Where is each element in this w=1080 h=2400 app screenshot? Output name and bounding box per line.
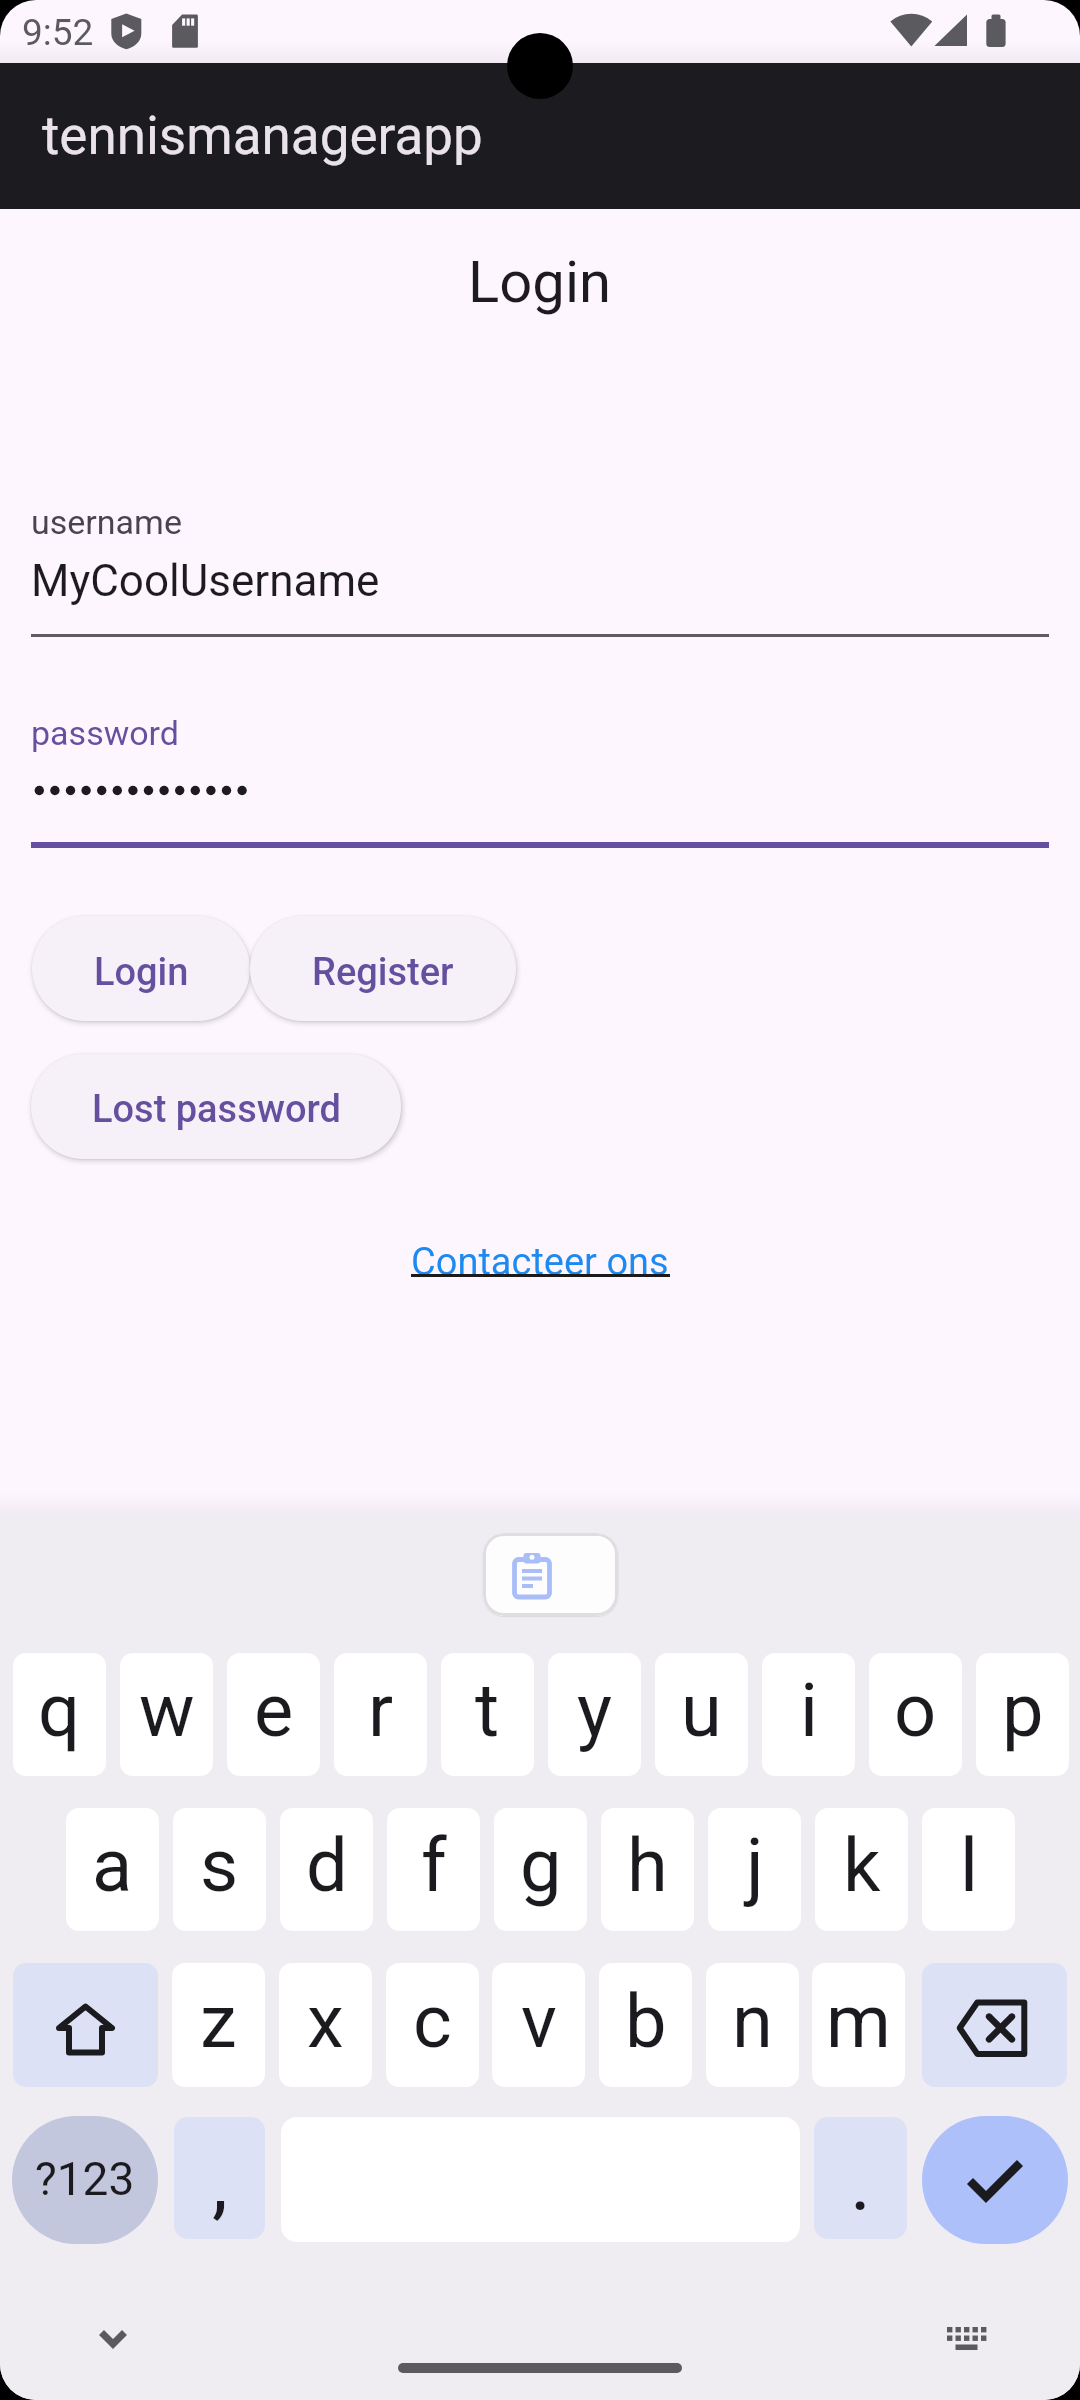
- button[interactable]: Enter: [922, 2116, 1068, 2244]
- staticText: username: [31, 502, 182, 542]
- staticText: w: [139, 1667, 195, 1754]
- button[interactable]: Contacteer ons: [411, 1240, 669, 1285]
- button[interactable]: t: [441, 1653, 534, 1776]
- staticText: h: [627, 1822, 668, 1909]
- staticText: m: [826, 1978, 891, 2065]
- button[interactable]: ?123: [12, 2116, 158, 2244]
- button[interactable]: l: [922, 1808, 1015, 1931]
- button[interactable]: Backspace: [922, 1963, 1067, 2087]
- staticText: ?123: [35, 2152, 135, 2206]
- button[interactable]: e: [227, 1653, 320, 1776]
- button[interactable]: Login: [32, 916, 250, 1021]
- button[interactable]: x: [279, 1963, 372, 2087]
- button[interactable]: .: [814, 2117, 907, 2239]
- button[interactable]: i: [762, 1653, 855, 1776]
- staticText: n: [732, 1978, 773, 2065]
- button[interactable]: g: [494, 1808, 587, 1931]
- staticText: 9:52: [22, 11, 94, 54]
- staticText: u: [681, 1667, 722, 1754]
- button[interactable]: z: [172, 1963, 265, 2087]
- button[interactable]: b: [599, 1963, 692, 2087]
- staticText: tennismanagerapp: [42, 105, 483, 167]
- button[interactable]: Hide keyboard: [84, 2313, 142, 2363]
- button[interactable]: u: [655, 1653, 748, 1776]
- staticText: o: [894, 1667, 937, 1754]
- staticText: j: [746, 1822, 764, 1909]
- staticText: Register: [312, 950, 454, 995]
- staticText: l: [960, 1822, 978, 1909]
- button[interactable]: h: [601, 1808, 694, 1931]
- staticText: Contacteer ons: [411, 1240, 669, 1285]
- staticText: t: [475, 1667, 500, 1754]
- staticText: Login: [94, 950, 189, 995]
- staticText: y: [577, 1667, 613, 1754]
- staticText: Login: [468, 248, 612, 316]
- button[interactable]: y: [548, 1653, 641, 1776]
- button[interactable]: v: [492, 1963, 585, 2087]
- button[interactable]: o: [869, 1653, 962, 1776]
- button[interactable]: r: [334, 1653, 427, 1776]
- staticText: v: [521, 1978, 557, 2065]
- staticText: k: [843, 1822, 881, 1909]
- staticText: i: [800, 1667, 818, 1754]
- staticText: password: [31, 713, 180, 753]
- button[interactable]: p: [976, 1653, 1069, 1776]
- button[interactable]: ,: [174, 2117, 265, 2239]
- staticText: f: [421, 1822, 447, 1909]
- button[interactable]: a: [66, 1808, 159, 1931]
- staticText: Lost password: [92, 1087, 341, 1132]
- staticText: p: [1002, 1667, 1044, 1754]
- button[interactable]: w: [120, 1653, 213, 1776]
- staticText: r: [368, 1667, 394, 1754]
- button[interactable]: s: [173, 1808, 266, 1931]
- staticText: b: [625, 1978, 667, 2065]
- button[interactable]: f: [387, 1808, 480, 1931]
- button[interactable]: q: [13, 1653, 106, 1776]
- staticText: ,: [212, 2136, 228, 2230]
- button[interactable]: Switch keyboard: [937, 2313, 997, 2363]
- button[interactable]: Lost password: [31, 1054, 401, 1159]
- button[interactable]: m: [812, 1963, 905, 2087]
- staticText: q: [38, 1667, 81, 1754]
- button[interactable]: Paste from clipboard: [483, 1533, 618, 1616]
- button[interactable]: c: [386, 1963, 479, 2087]
- staticText: s: [200, 1822, 239, 1909]
- staticText: c: [413, 1978, 452, 2065]
- staticText: MyCoolUsername: [31, 555, 380, 607]
- button[interactable]: n: [706, 1963, 799, 2087]
- button[interactable]: j: [708, 1808, 801, 1931]
- button[interactable]: k: [815, 1808, 908, 1931]
- staticText: z: [200, 1978, 237, 2065]
- staticText: g: [520, 1822, 562, 1909]
- button[interactable]: Register: [250, 916, 516, 1021]
- staticText: d: [306, 1822, 348, 1909]
- staticText: a: [92, 1822, 133, 1909]
- staticText: .: [850, 2136, 872, 2230]
- button[interactable]: d: [280, 1808, 373, 1931]
- staticText: x: [307, 1978, 344, 2065]
- button[interactable]: Shift: [13, 1963, 158, 2087]
- staticText: e: [254, 1667, 294, 1754]
